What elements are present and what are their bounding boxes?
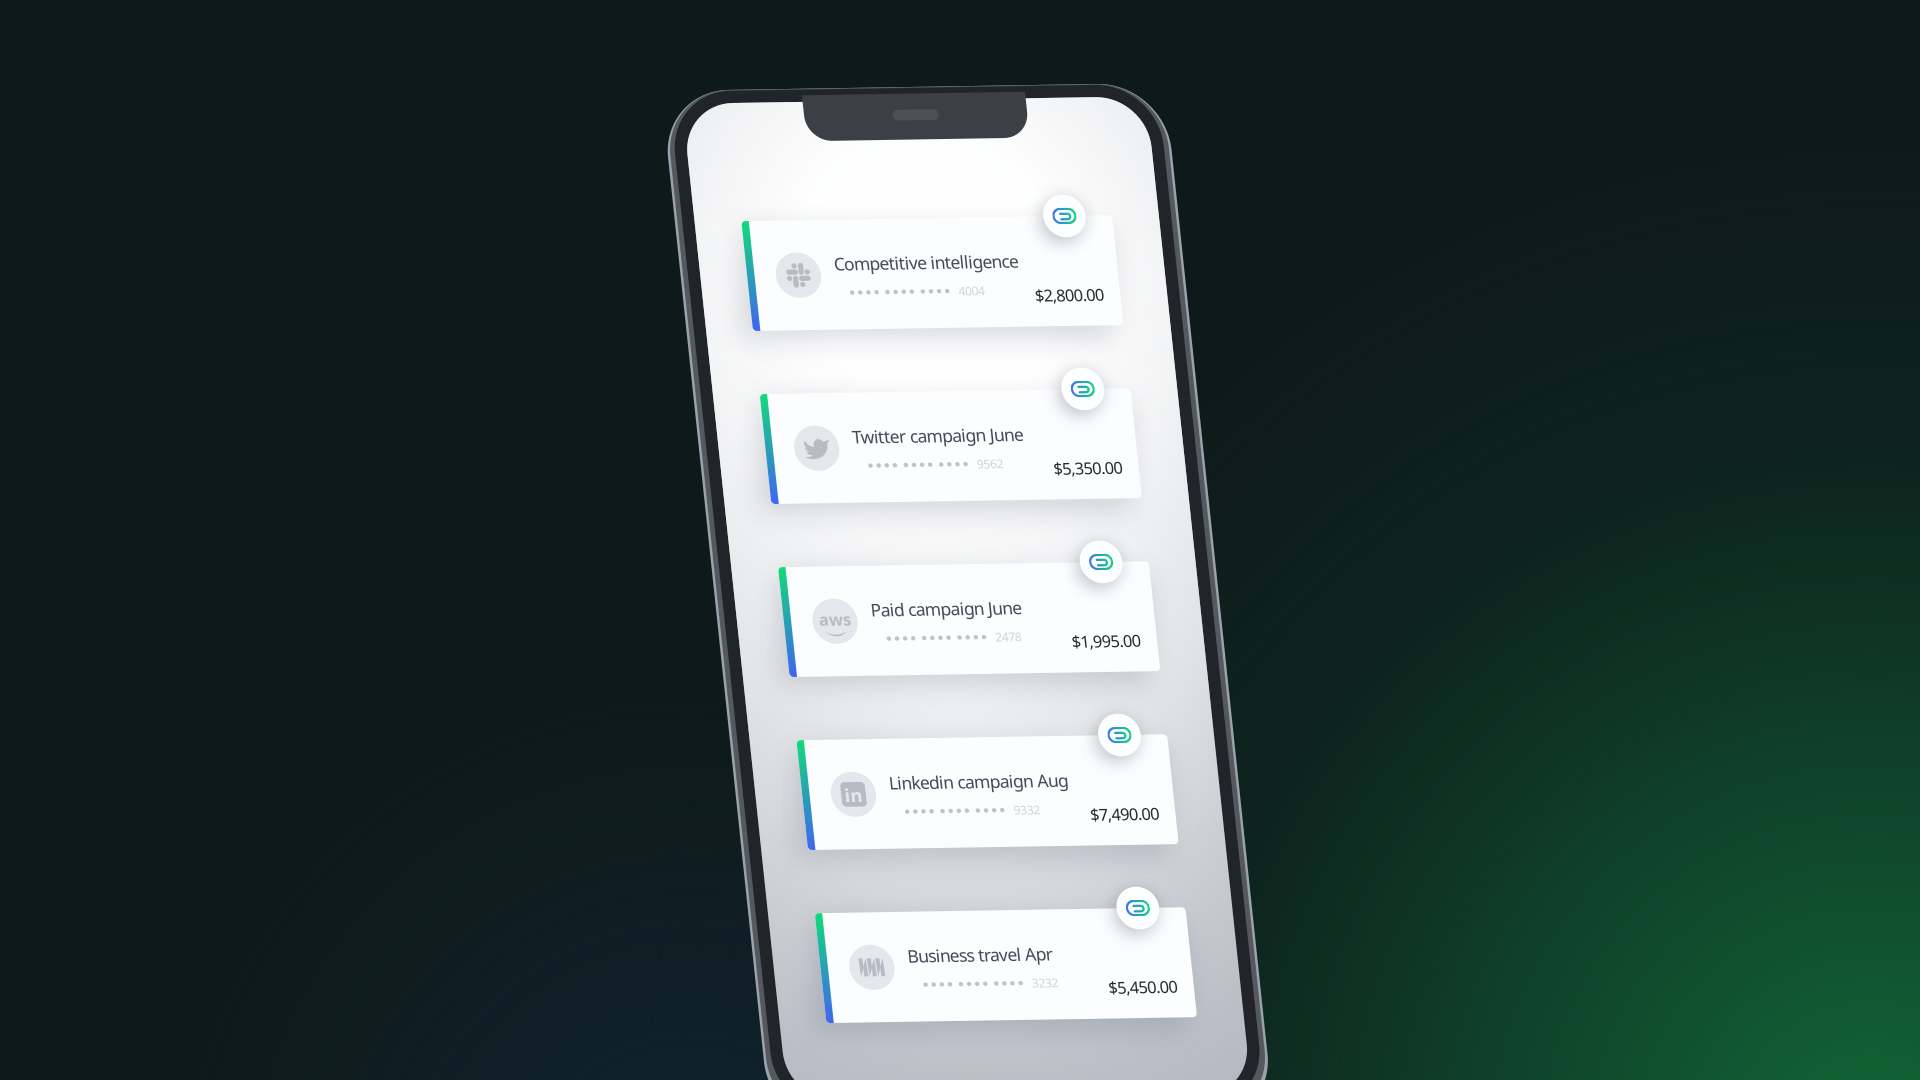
staticText: $2,800.00 <box>1090 334 1174 360</box>
staticText: Linkedin campaign Aug <box>849 924 1068 952</box>
button[interactable]: Attach receipt <box>1110 436 1162 488</box>
button[interactable]: Competitive intelligence <box>742 251 1194 385</box>
staticText: aws <box>785 724 824 751</box>
staticText: 4004 <box>997 330 1029 350</box>
button[interactable]: Attach receipt <box>1110 858 1162 910</box>
staticText: in <box>793 937 815 967</box>
staticText: $1,995.00 <box>1090 756 1174 782</box>
staticText: $7,490.00 <box>1090 967 1174 993</box>
button[interactable]: aws <box>742 673 1194 807</box>
staticText: Twitter campaign June <box>849 502 1058 530</box>
button[interactable]: in <box>742 884 1194 1018</box>
button[interactable]: Attach receipt <box>1110 647 1162 699</box>
staticText: Paid campaign June <box>849 713 1034 741</box>
button[interactable]: Attach receipt <box>1110 225 1162 277</box>
staticText: 9332 <box>997 963 1029 983</box>
staticText: Competitive intelligence <box>849 291 1074 319</box>
staticText: $5,350.00 <box>1090 545 1174 571</box>
button[interactable]: Twitter campaign June <box>742 462 1194 596</box>
